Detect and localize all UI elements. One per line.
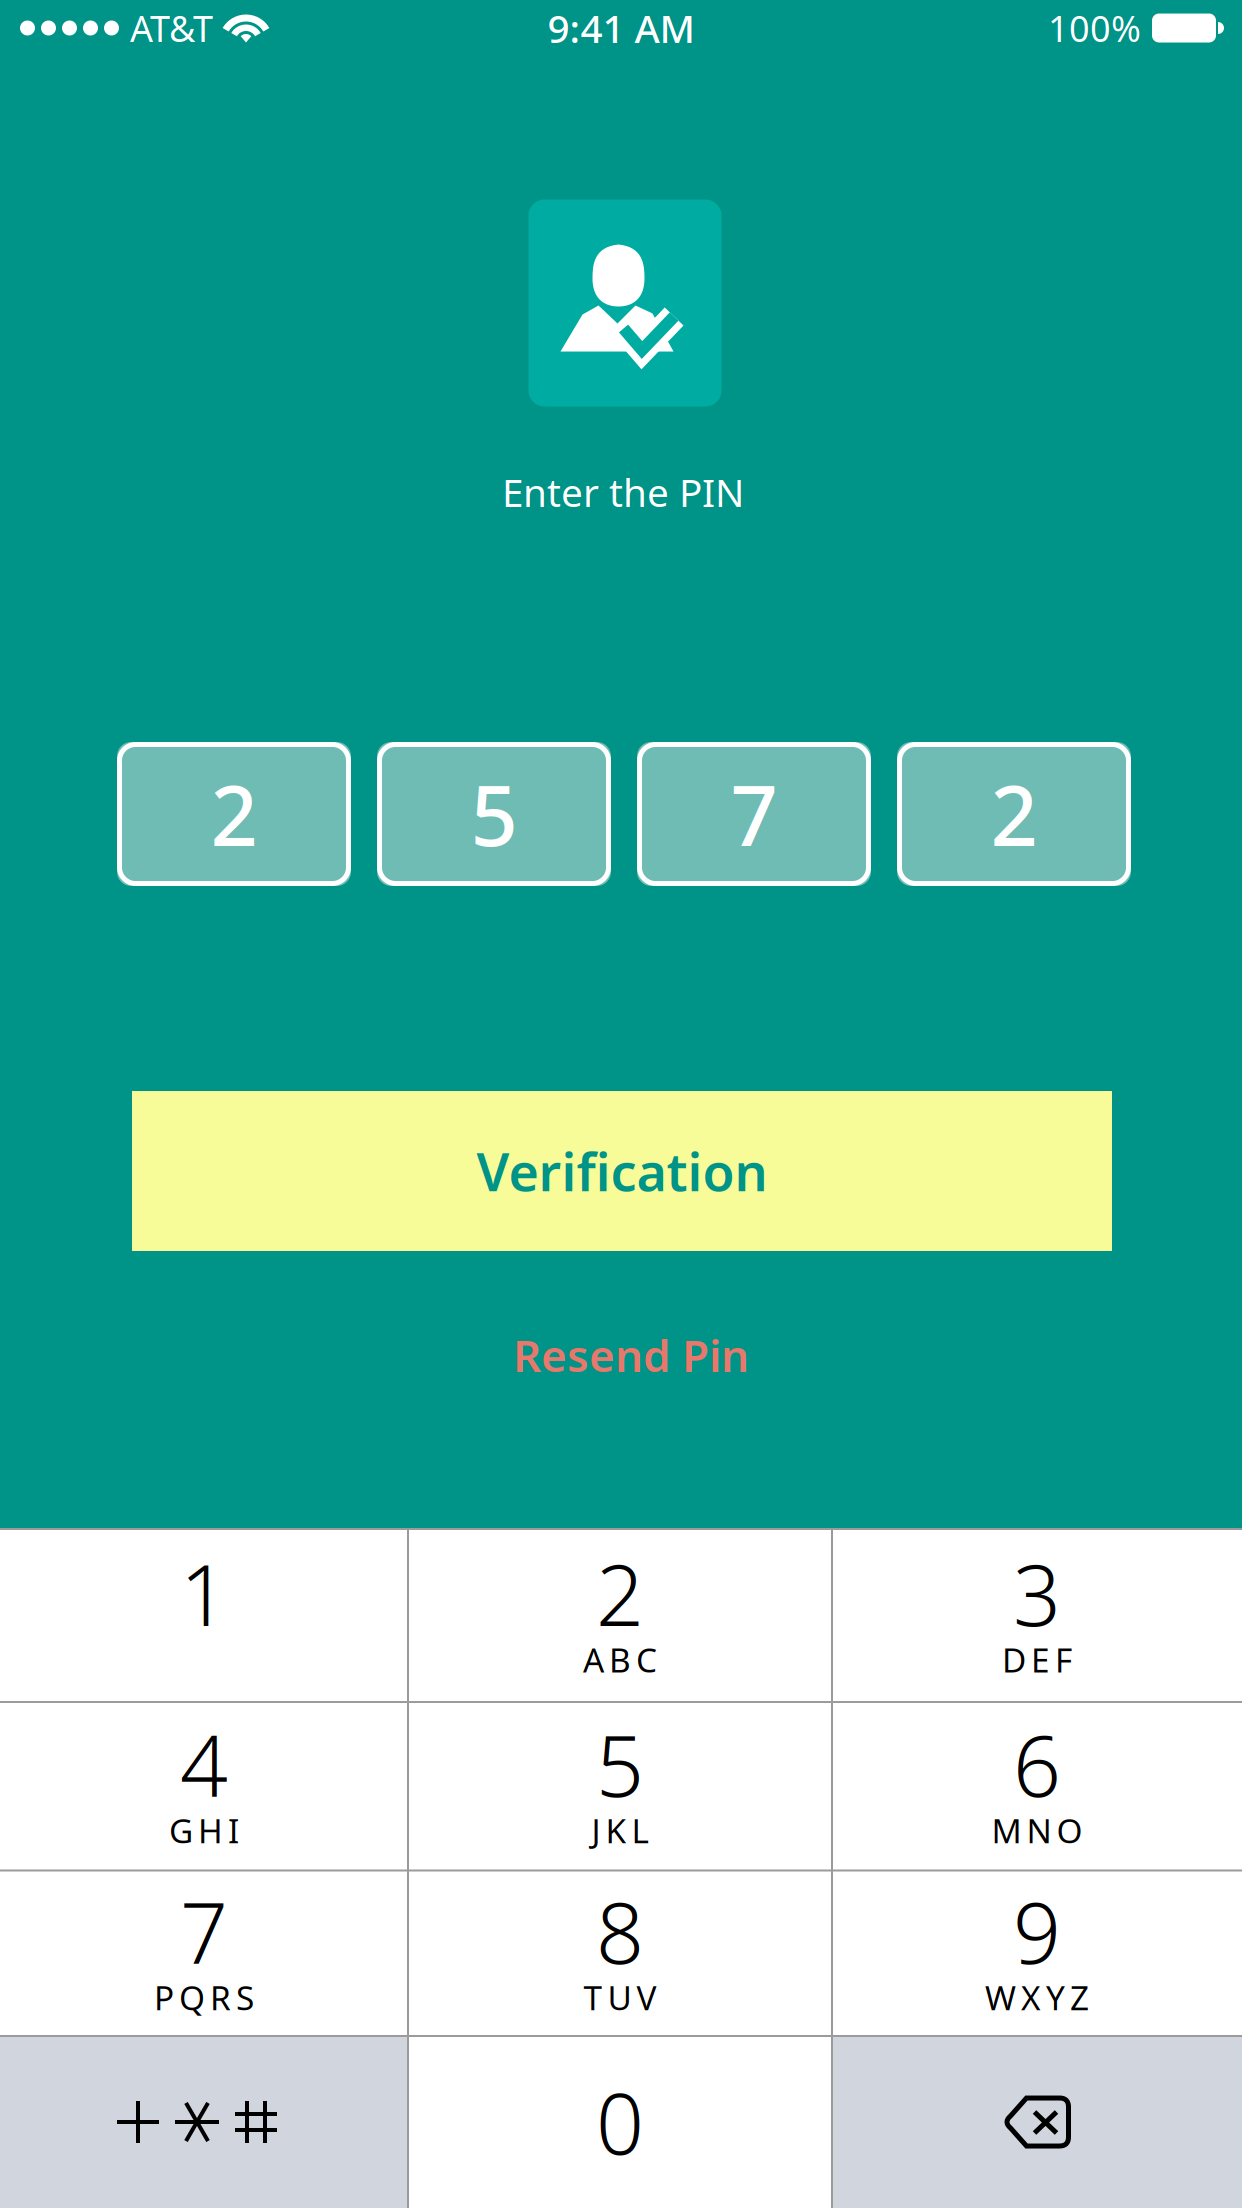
staticText: Verification [476, 1136, 767, 1206]
staticText: GHI [169, 1808, 239, 1852]
staticText: 7 [180, 1875, 228, 1987]
staticText: 9:41 AM [547, 2, 694, 54]
staticText: AT&T [130, 4, 213, 52]
staticText: 3 [1013, 1538, 1061, 1649]
button[interactable]: Resend Pin [421, 1310, 841, 1400]
button[interactable]: 0 [408, 2036, 832, 2208]
staticText: DEF [1002, 1637, 1072, 1682]
staticText: PQRS [154, 1975, 254, 2019]
button[interactable]: 5 [408, 1702, 832, 1870]
staticText: Resend Pin [513, 1326, 749, 1384]
staticText: TUV [583, 1975, 656, 2019]
staticText: 1 [180, 1538, 228, 1649]
button[interactable]: 2 [408, 1529, 832, 1702]
staticText: 100% [1048, 4, 1141, 52]
staticText: 2 [210, 759, 257, 869]
staticText: 4 [180, 1708, 228, 1820]
staticText: ABC [583, 1637, 657, 1682]
button[interactable]: 8 [408, 1870, 832, 2036]
staticText: Enter the PIN [502, 466, 744, 518]
staticText: 5 [470, 759, 517, 869]
button[interactable]: 3 [832, 1529, 1242, 1702]
staticText: 7 [730, 759, 777, 869]
staticText: 6 [1013, 1708, 1061, 1820]
staticText: 2 [990, 759, 1037, 869]
button[interactable]: 6 [832, 1702, 1242, 1870]
button[interactable]: 7 [0, 1870, 408, 2036]
staticText: 8 [596, 1875, 644, 1987]
button[interactable]: Symbols [0, 2036, 408, 2208]
staticText: 9 [1013, 1875, 1061, 1987]
staticText: WXYZ [985, 1975, 1089, 2019]
staticText: 0 [596, 2066, 644, 2178]
staticText: MNO [991, 1808, 1082, 1852]
staticText: 2 [596, 1538, 644, 1649]
button[interactable]: Verification [132, 1091, 1112, 1251]
button[interactable]: 4 [0, 1702, 408, 1870]
staticText: 5 [596, 1708, 644, 1820]
button[interactable]: Delete [832, 2036, 1242, 2208]
button[interactable]: 9 [832, 1870, 1242, 2036]
button[interactable]: 1 [0, 1529, 408, 1702]
staticText: JKL [591, 1808, 648, 1852]
